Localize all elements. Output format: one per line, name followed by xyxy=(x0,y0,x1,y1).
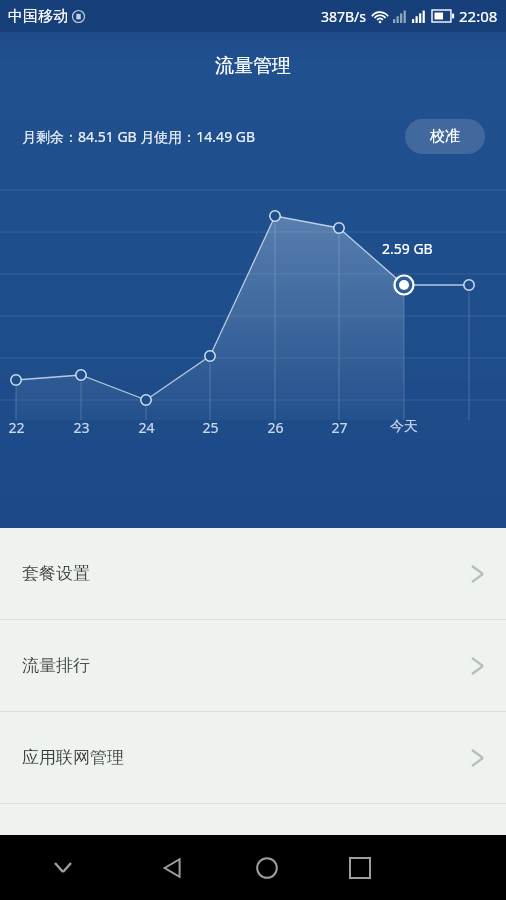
staticText: 校准 xyxy=(430,127,460,146)
button[interactable]: Collapse xyxy=(0,835,126,900)
button[interactable]: Home xyxy=(220,835,313,900)
staticText: 26 xyxy=(267,418,284,437)
staticText: 2.59 GB xyxy=(382,239,433,258)
staticText: 23 xyxy=(73,418,90,437)
staticText: 22 xyxy=(8,418,25,437)
staticText: 流量排行 xyxy=(22,655,90,676)
staticText: 27 xyxy=(331,418,348,437)
staticText: 今天 xyxy=(390,418,418,436)
staticText: 22:08 xyxy=(459,6,498,26)
staticText: 中国移动 xyxy=(8,7,68,26)
button[interactable]: Recent apps xyxy=(313,835,406,900)
button[interactable]: 套餐设置 xyxy=(0,528,506,619)
staticText: 25 xyxy=(202,418,219,437)
staticText: 套餐设置 xyxy=(22,563,90,584)
staticText: 流量管理 xyxy=(215,54,291,78)
staticText: 月剩余：84.51 GB 月使用：14.49 GB xyxy=(22,127,256,146)
button[interactable]: 校准 xyxy=(405,119,485,154)
button[interactable]: 应用联网管理 xyxy=(0,712,506,803)
button[interactable]: 流量排行 xyxy=(0,620,506,711)
staticText: 应用联网管理 xyxy=(22,747,124,768)
staticText: 387B/s xyxy=(321,7,367,26)
button[interactable]: Back xyxy=(126,835,220,900)
staticText: 24 xyxy=(138,418,155,437)
